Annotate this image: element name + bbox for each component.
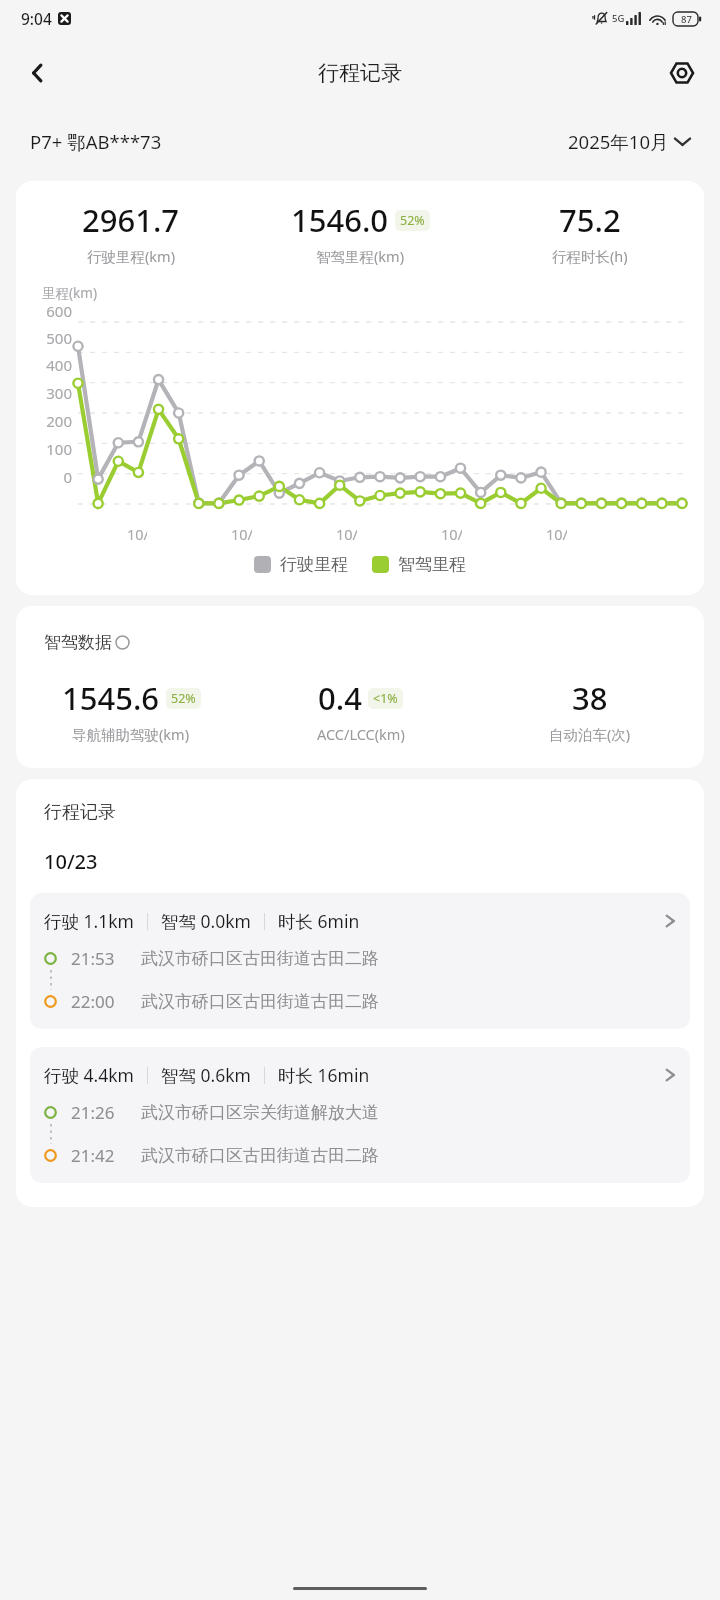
staticText: 21:42 [71, 1144, 115, 1167]
staticText: 行驶里程 [280, 554, 348, 575]
staticText: 智驾 0.0km [161, 909, 251, 933]
staticText: 10/25 [546, 524, 567, 544]
staticText: 21:26 [71, 1101, 115, 1124]
button[interactable]: Back [14, 49, 62, 97]
staticText: 10/10 [231, 524, 252, 544]
staticText: 1545.6 [62, 677, 160, 719]
staticText: 500 [46, 328, 72, 348]
button[interactable]: 行驶 4.4km [30, 1047, 690, 1183]
staticText: 87 [681, 13, 692, 26]
staticText: 导航辅助驾驶(km) [72, 724, 190, 744]
staticText: 10/15 [336, 524, 357, 544]
staticText: 行程记录 [318, 60, 402, 86]
staticText: 行程记录 [44, 801, 116, 824]
other: Info [115, 635, 130, 650]
staticText: 武汉市硚口区古田街道古田二路 [141, 948, 379, 969]
staticText: 75.2 [559, 199, 621, 241]
staticText: 自动泊车(次) [549, 724, 631, 744]
staticText: 行程时长(h) [552, 246, 628, 266]
staticText: 行驶 4.4km [44, 1063, 134, 1087]
staticText: 行驶 1.1km [44, 909, 134, 933]
staticText: 9:04 [21, 8, 52, 29]
staticText: 智驾里程 [398, 554, 466, 575]
staticText: 2025年10月 [568, 129, 669, 154]
staticText: 38 [572, 677, 608, 719]
staticText: P7+ 鄂AB***73 [30, 129, 162, 154]
staticText: 10/05 [127, 524, 147, 544]
staticText: 时长 16min [278, 1063, 370, 1087]
button[interactable]: 行驶 1.1km [30, 893, 690, 1029]
staticText: 2961.7 [82, 199, 180, 241]
staticText: 10/20 [441, 524, 462, 544]
staticText: 智驾 0.6km [161, 1063, 251, 1087]
staticText: <1% [373, 690, 398, 707]
staticText: 智驾里程(km) [316, 246, 405, 266]
staticText: 武汉市硚口区古田街道古田二路 [141, 1145, 379, 1166]
staticText: 600 [46, 301, 72, 321]
staticText: 10/23 [44, 848, 98, 875]
staticText: 52% [171, 690, 196, 707]
staticText: 200 [46, 411, 72, 431]
staticText: 行驶里程(km) [87, 246, 176, 266]
staticText: 300 [46, 383, 72, 403]
staticText: 智驾数据 [44, 632, 112, 653]
staticText: ACC/LCC(km) [317, 724, 405, 744]
staticText: 21:53 [71, 947, 115, 970]
staticText: 5G [612, 12, 625, 25]
staticText: 100 [46, 439, 72, 459]
staticText: 0.4 [318, 677, 362, 719]
staticText: 400 [46, 355, 72, 375]
staticText: 0 [63, 467, 72, 487]
button[interactable]: Settings [658, 49, 706, 97]
button[interactable]: 2025年10月 [568, 129, 690, 154]
staticText: 里程(km) [42, 284, 97, 302]
staticText: 52% [400, 212, 425, 229]
staticText: 1546.0 [291, 199, 389, 241]
staticText: 武汉市硚口区宗关街道解放大道 [141, 1102, 379, 1123]
staticText: 时长 6min [278, 909, 360, 933]
button[interactable]: 智驾数据 [44, 632, 130, 653]
staticText: 22:00 [71, 990, 115, 1013]
staticText: 武汉市硚口区古田街道古田二路 [141, 991, 379, 1012]
